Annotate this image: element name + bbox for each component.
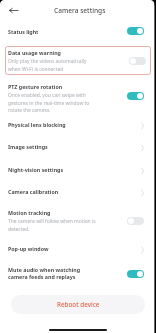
staticText: Mute audio when watching camera feeds an… (8, 266, 96, 281)
button[interactable]: Data usage warning (5, 46, 151, 75)
staticText: PTZ gesture rotation (8, 83, 63, 90)
button[interactable]: Open (130, 241, 144, 255)
button[interactable]: Switch on (127, 270, 144, 278)
button[interactable]: Mute audio when watching camera feeds an… (0, 266, 156, 281)
button[interactable]: Switch on (127, 92, 144, 100)
staticText: Physical lens blocking (8, 121, 66, 128)
button[interactable]: Switch off (129, 57, 146, 65)
staticText: Night-vision settings (8, 166, 64, 173)
staticText: Status light (8, 28, 39, 35)
button[interactable]: Night-vision settings (0, 157, 156, 180)
button[interactable]: Switch off (127, 217, 144, 225)
staticText: Camera calibration (8, 188, 59, 195)
button[interactable]: Back (6, 3, 21, 18)
staticText: Data usage warning (8, 49, 61, 56)
button[interactable]: Camera calibration (0, 180, 156, 201)
button[interactable]: Switch on (127, 27, 144, 35)
staticText: Camera settings (54, 6, 106, 15)
button[interactable]: Status light (0, 27, 156, 35)
button[interactable]: Open (130, 161, 144, 177)
button[interactable]: PTZ gesture rotation (0, 83, 156, 113)
button[interactable]: Open (130, 183, 144, 199)
staticText: Image settings (8, 143, 48, 150)
button[interactable]: Open (130, 116, 144, 132)
button[interactable]: Motion tracking (0, 209, 156, 232)
button[interactable]: Open (130, 138, 144, 154)
staticText: Pop-up window (8, 245, 49, 252)
button[interactable]: Pop-up window (0, 241, 156, 255)
staticText: Motion tracking (8, 209, 51, 216)
staticText: Reboot device (57, 300, 100, 309)
staticText: Only play the videos automatically when … (8, 58, 96, 72)
button[interactable]: Physical lens blocking (0, 113, 156, 135)
button[interactable]: Image settings (0, 135, 156, 157)
button[interactable]: Reboot device (11, 295, 145, 314)
staticText: Once enabled, you can swipe with gesture… (8, 92, 96, 113)
staticText: The camera will follow when motion is de… (8, 218, 96, 232)
